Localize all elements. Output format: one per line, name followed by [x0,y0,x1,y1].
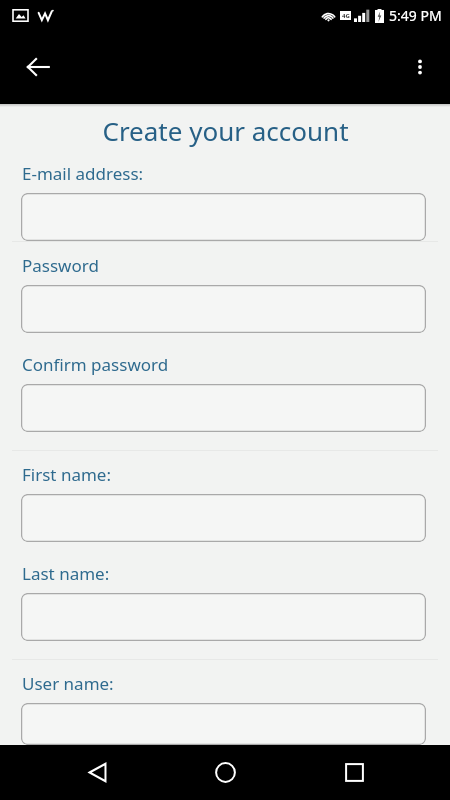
button[interactable]: Recent apps [322,745,386,800]
staticText: Password [22,254,99,277]
staticText: 4G [342,12,350,20]
button[interactable]: More options [396,43,444,91]
staticText: Last name: [22,562,110,585]
button[interactable]: Home [193,745,257,800]
staticText: Confirm password [22,353,169,376]
button[interactable] [21,703,426,745]
staticText: First name: [22,463,112,486]
staticText: 5:49 PM [389,6,442,25]
staticText: User name: [22,672,114,695]
button[interactable]: Back [10,39,66,95]
staticText: Create your account [102,113,349,148]
button[interactable] [21,494,426,542]
button[interactable] [21,593,426,641]
staticText: E-mail address: [22,162,144,185]
button[interactable]: Back [65,745,129,800]
button[interactable] [21,193,426,241]
button[interactable] [21,384,426,432]
button[interactable] [21,285,426,333]
